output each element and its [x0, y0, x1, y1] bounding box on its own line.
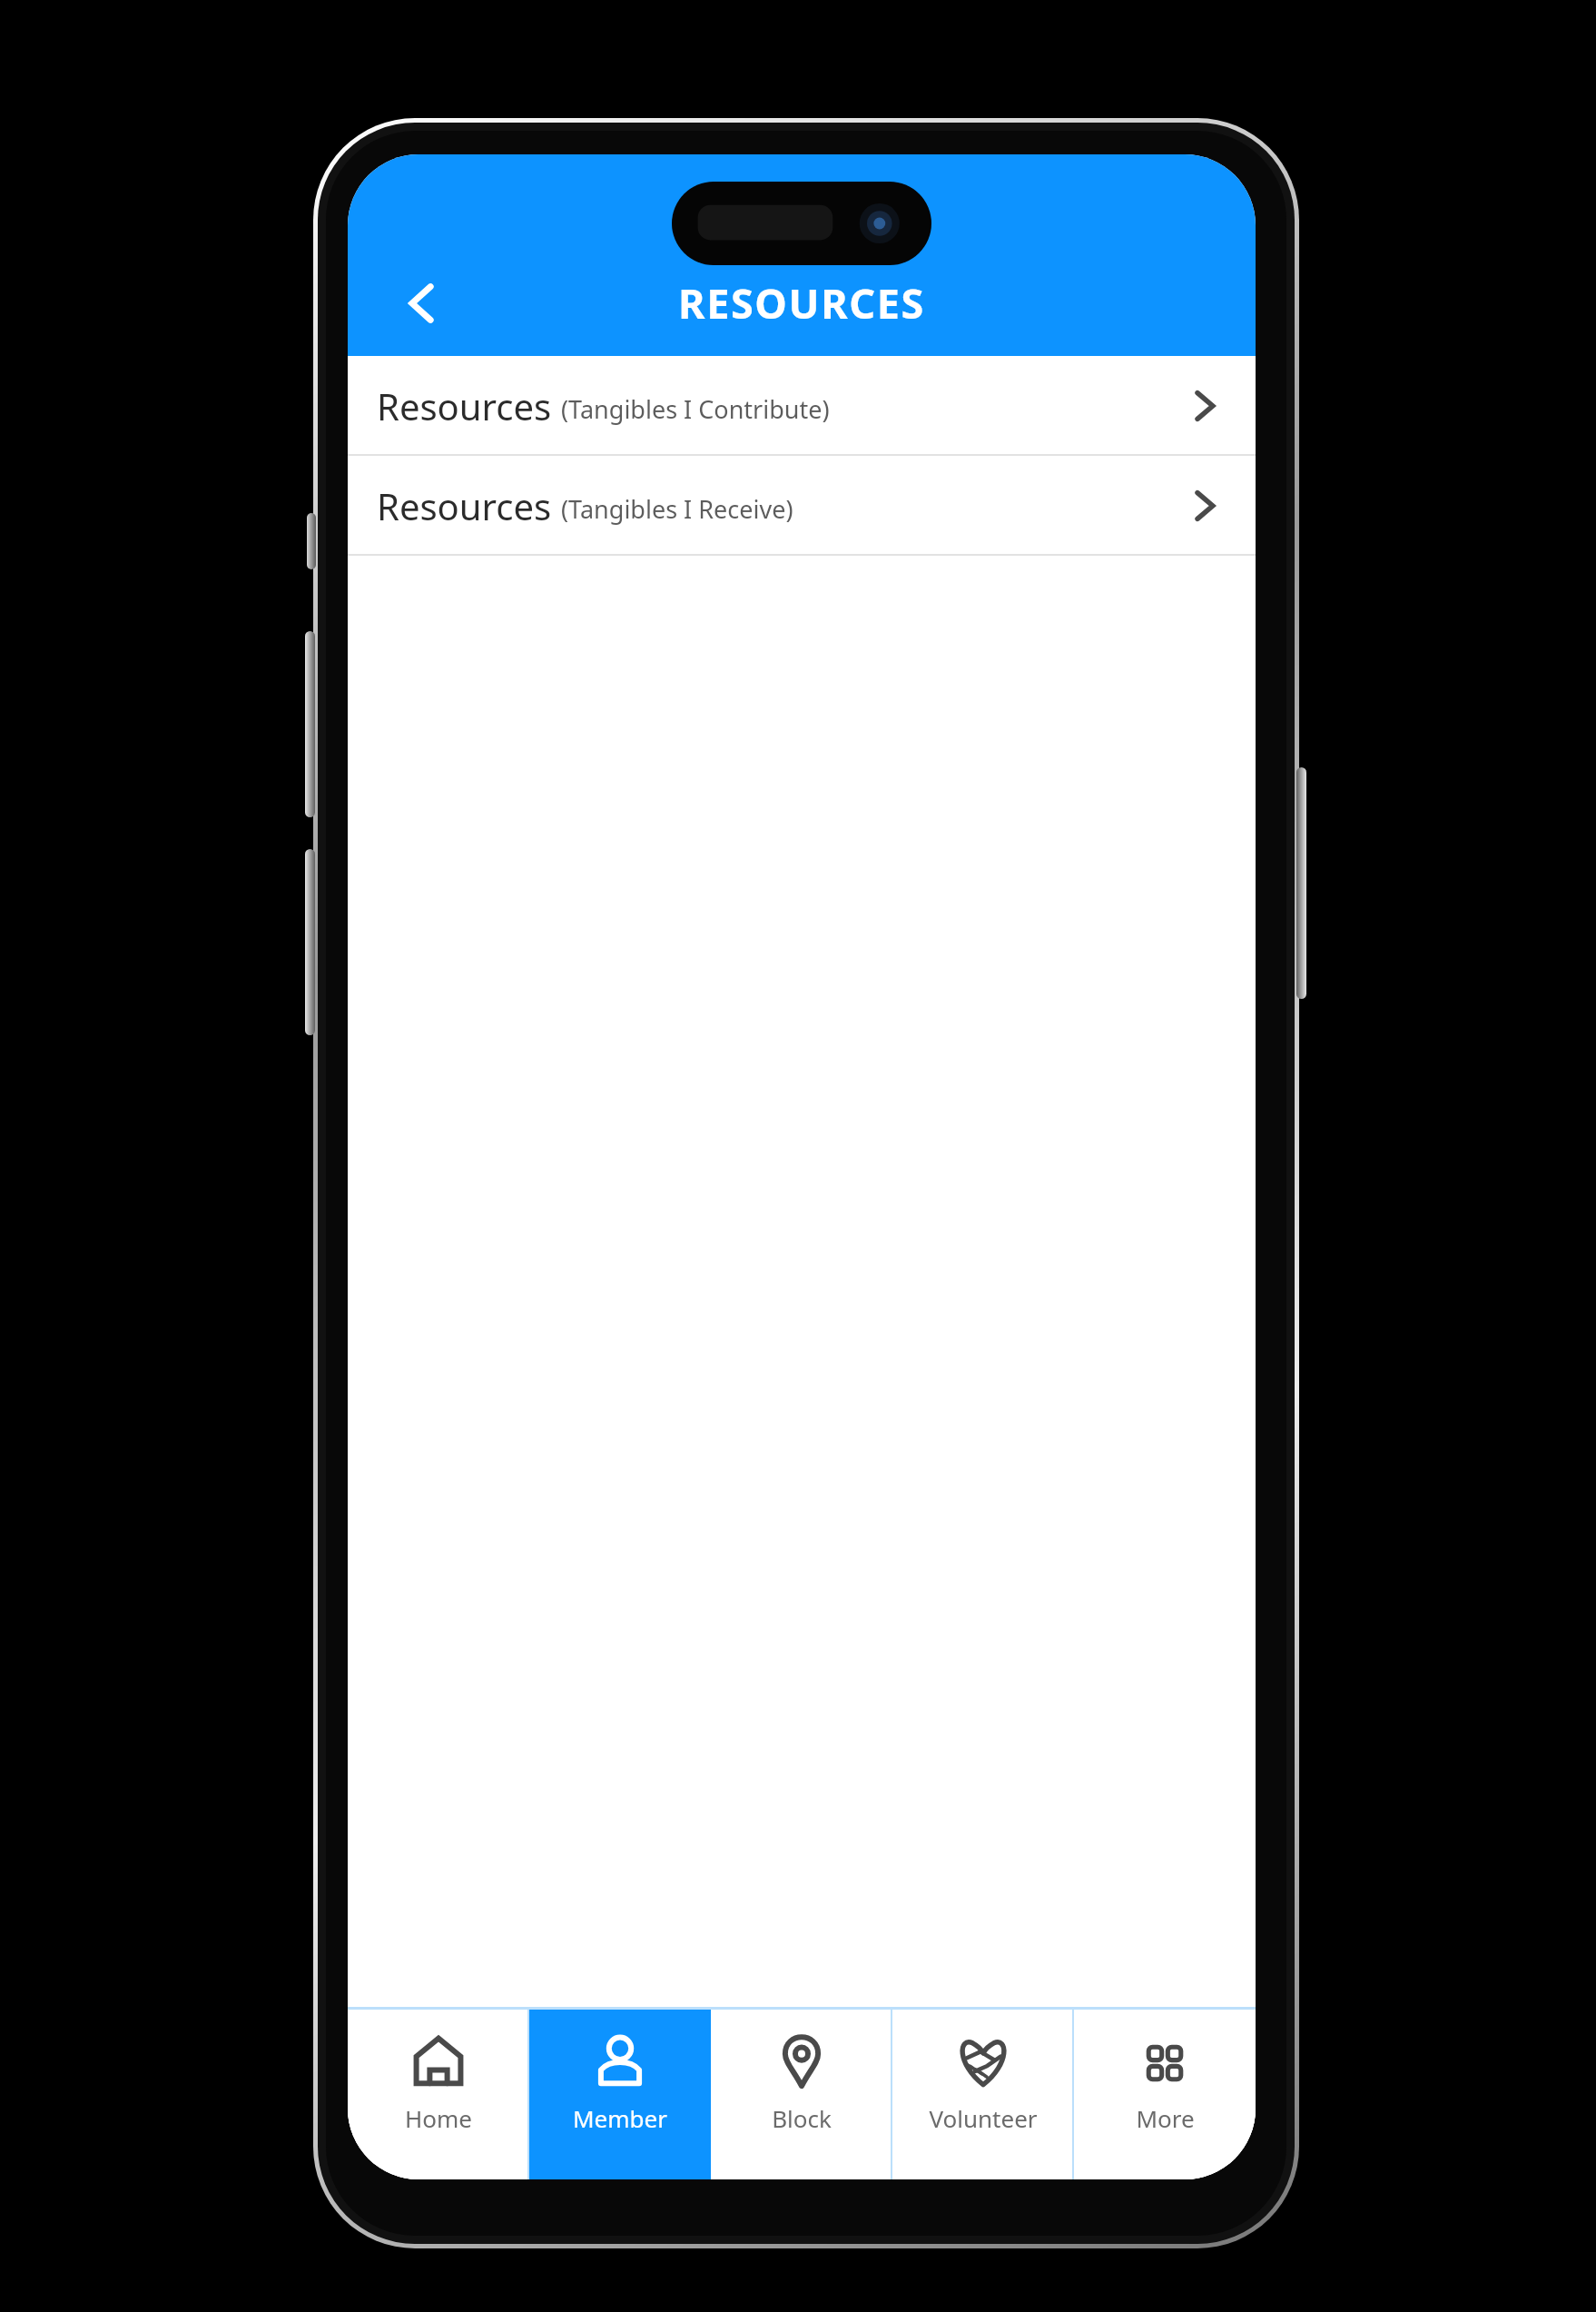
button[interactable]: Volunteer	[892, 2010, 1074, 2179]
staticText: Resources	[377, 481, 552, 530]
button[interactable]: Member	[529, 2010, 711, 2179]
button[interactable]: More	[1074, 2010, 1256, 2179]
button[interactable]: Block	[711, 2010, 892, 2179]
staticText: RESOURCES	[348, 275, 1256, 331]
staticText: (Tangibles I Contribute)	[561, 392, 830, 426]
staticText: More	[1136, 2102, 1195, 2134]
staticText: (Tangibles I Receive)	[561, 492, 793, 526]
button[interactable]: Home	[348, 2010, 529, 2179]
staticText: Block	[772, 2102, 832, 2134]
button[interactable]: Resources	[348, 356, 1256, 456]
staticText: Volunteer	[929, 2102, 1038, 2134]
staticText: Home	[405, 2102, 472, 2134]
button[interactable]: Resources	[348, 456, 1256, 556]
button[interactable]: Back	[384, 265, 460, 341]
staticText: Resources	[377, 381, 552, 430]
staticText: Member	[573, 2102, 667, 2134]
